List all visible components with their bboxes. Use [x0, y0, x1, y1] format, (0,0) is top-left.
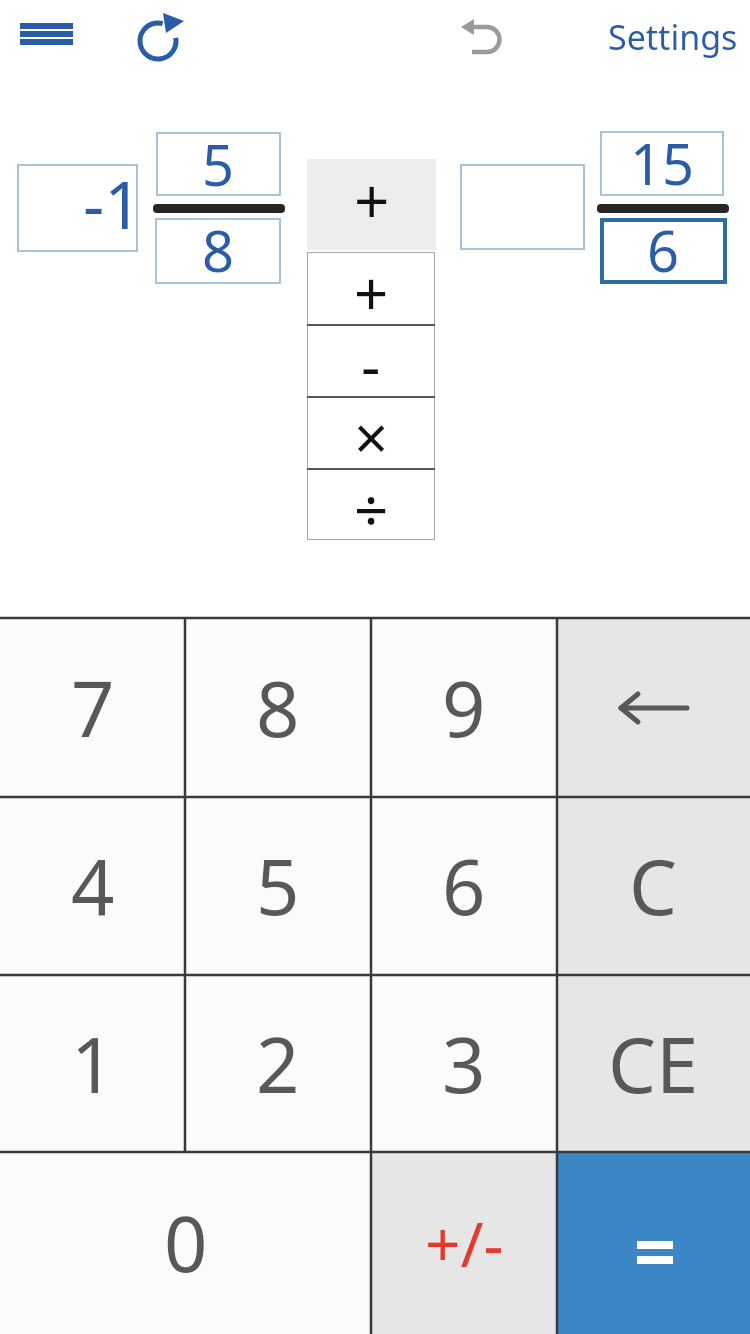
- staticText: 9: [442, 656, 486, 760]
- button[interactable]: Settings: [590, 9, 738, 65]
- button[interactable]: 8: [155, 218, 281, 284]
- button[interactable]: 6: [371, 797, 557, 975]
- staticText: ×: [354, 396, 389, 468]
- button[interactable]: 8: [185, 618, 371, 797]
- button[interactable]: 0: [0, 1152, 371, 1334]
- staticText: +/-: [425, 1201, 504, 1285]
- staticText: -1: [83, 158, 143, 246]
- button[interactable]: 3: [371, 975, 557, 1152]
- button[interactable]: [450, 10, 510, 66]
- button[interactable]: -: [307, 324, 435, 396]
- staticText: -: [361, 324, 381, 396]
- button[interactable]: +: [307, 252, 435, 324]
- button[interactable]: 15: [600, 131, 724, 196]
- button[interactable]: [557, 618, 750, 797]
- button[interactable]: +: [307, 159, 436, 250]
- button[interactable]: 9: [371, 618, 557, 797]
- button[interactable]: 6: [600, 218, 727, 284]
- button[interactable]: [12, 14, 82, 56]
- button[interactable]: 5: [185, 797, 371, 975]
- staticText: Settings: [608, 14, 738, 60]
- staticText: 6: [647, 212, 680, 278]
- button[interactable]: ÷: [307, 468, 435, 540]
- staticText: 1: [71, 1012, 115, 1116]
- button[interactable]: [132, 12, 188, 68]
- button[interactable]: 4: [0, 797, 185, 975]
- staticText: 8: [256, 656, 300, 760]
- staticText: 6: [442, 834, 486, 938]
- staticText: 3: [442, 1012, 486, 1116]
- staticText: CE: [608, 1012, 699, 1116]
- staticText: 4: [71, 834, 115, 938]
- staticText: 2: [256, 1012, 300, 1116]
- button[interactable]: +/-: [371, 1152, 557, 1334]
- button[interactable]: 7: [0, 618, 185, 797]
- button[interactable]: ×: [307, 396, 435, 468]
- button[interactable]: 1: [0, 975, 185, 1152]
- staticText: 7: [71, 656, 115, 760]
- staticText: 0: [164, 1191, 208, 1295]
- button[interactable]: C: [557, 797, 750, 975]
- staticText: +: [354, 252, 389, 324]
- staticText: 5: [202, 126, 235, 190]
- button[interactable]: [557, 1152, 750, 1334]
- staticText: ÷: [354, 468, 389, 540]
- staticText: 8: [202, 212, 235, 278]
- button[interactable]: -1: [17, 164, 138, 252]
- staticText: C: [629, 834, 678, 938]
- button[interactable]: 5: [156, 132, 281, 196]
- button[interactable]: 2: [185, 975, 371, 1152]
- staticText: 15: [630, 125, 695, 190]
- staticText: +: [354, 158, 390, 242]
- button[interactable]: [460, 164, 585, 250]
- staticText: 5: [256, 834, 300, 938]
- button[interactable]: CE: [557, 975, 750, 1152]
